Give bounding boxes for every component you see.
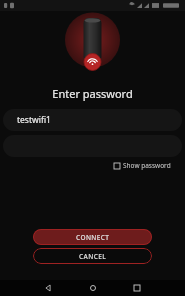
- button[interactable]: Recent apps: [131, 282, 143, 294]
- staticText: CONNECT: [76, 233, 110, 242]
- button[interactable]: CONNECT: [33, 229, 152, 245]
- staticText: CANCEL: [79, 252, 107, 261]
- button[interactable]: Home: [87, 282, 99, 294]
- button[interactable]: Back: [42, 282, 54, 294]
- staticText: Show password: [123, 161, 171, 170]
- button[interactable]: testwifi1: [3, 109, 182, 131]
- staticText: Enter password: [52, 86, 133, 101]
- button[interactable]: Show password: [112, 158, 173, 173]
- staticText: testwifi1: [17, 114, 51, 126]
- button[interactable]: CANCEL: [33, 248, 152, 264]
